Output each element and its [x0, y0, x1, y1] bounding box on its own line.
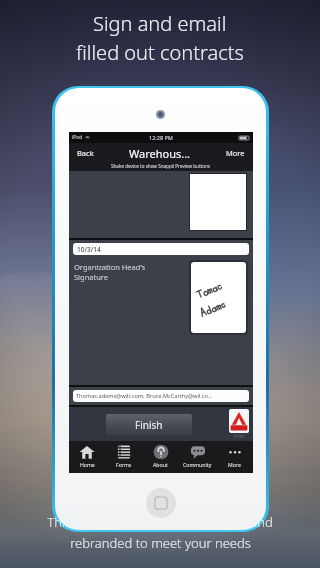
button[interactable]: Home	[69, 441, 105, 473]
staticText: Community	[183, 461, 212, 468]
button[interactable]: More	[216, 441, 253, 473]
staticText: More	[228, 461, 241, 468]
button[interactable]: Community	[179, 441, 216, 473]
staticText: Shake device to show Snappii Preview but…	[111, 163, 211, 169]
button[interactable]: Print PDF	[229, 409, 249, 439]
staticText: rebranded to meet your needs	[70, 534, 251, 552]
staticText: More	[226, 148, 245, 158]
staticText: About	[153, 461, 168, 468]
button[interactable]: About	[142, 441, 179, 473]
staticText: Print	[234, 433, 245, 439]
staticText: 10/3/14	[77, 245, 101, 254]
staticText: filled out contracts	[76, 39, 244, 66]
staticText: Sign and email	[93, 10, 227, 37]
staticText: Home	[80, 461, 95, 468]
button[interactable]: Signature field	[189, 260, 248, 335]
staticText: Back	[77, 148, 94, 158]
staticText: Finish	[135, 418, 163, 432]
button[interactable]: Finish	[106, 414, 192, 435]
staticText: Forms	[116, 461, 132, 468]
staticText: iPod	[72, 134, 83, 141]
staticText: Thomas.adams@wilt.com, Bruce.McCarthy@wi…	[76, 392, 213, 400]
staticText: Warehous...	[129, 146, 191, 161]
button[interactable]: Back	[75, 146, 96, 160]
button[interactable]: More	[224, 146, 247, 160]
button[interactable]: Thomas.adams@wilt.com, Bruce.McCarthy@wi…	[73, 390, 249, 402]
staticText: This app can be 100% customized and	[47, 513, 273, 531]
button[interactable]: Forms	[105, 441, 142, 473]
staticText: 12:28 PM	[149, 134, 173, 141]
staticText: Organization Head's	[74, 262, 146, 272]
button[interactable]: 10/3/14	[73, 243, 249, 255]
staticText: Signature	[74, 272, 109, 282]
